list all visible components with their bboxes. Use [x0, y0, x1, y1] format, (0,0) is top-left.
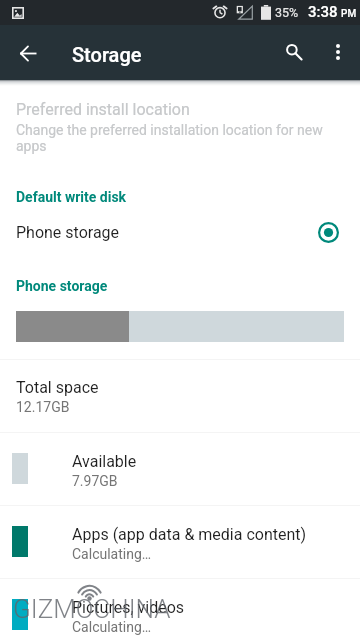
staticText: 12.17GB — [16, 399, 70, 415]
button[interactable]: Phone storage — [0, 214, 360, 251]
button[interactable]: Available — [0, 433, 360, 505]
staticText: Phone storage — [16, 278, 108, 294]
staticText: Pictures, videos — [72, 598, 185, 617]
staticText: GIZMOCHINA — [13, 594, 171, 624]
staticText: Calculating… — [72, 619, 152, 635]
button[interactable]: Apps (app data & media content) — [0, 506, 360, 578]
staticText: Phone storage — [16, 223, 321, 242]
button[interactable]: Preferred install location — [0, 93, 360, 161]
button[interactable]: Pictures, videos — [0, 579, 360, 640]
button[interactable]: Search — [270, 28, 318, 76]
staticText: PM — [341, 8, 357, 20]
staticText: 35% — [275, 5, 299, 20]
staticText: Total space — [16, 378, 99, 397]
staticText: Storage — [72, 43, 142, 66]
staticText: Available — [72, 452, 137, 471]
button[interactable]: Total space — [0, 360, 360, 432]
staticText: Preferred install location — [16, 100, 190, 119]
staticText: Calculating… — [72, 546, 152, 562]
staticText: 7.97GB — [72, 473, 118, 489]
staticText: Apps (app data & media content) — [72, 525, 307, 544]
button[interactable]: More options — [320, 29, 356, 77]
staticText: 3:38 — [308, 3, 338, 21]
button[interactable]: Navigate up — [4, 29, 52, 77]
staticText: Change the preferred installation locati… — [16, 122, 344, 154]
staticText: Default write disk — [16, 189, 127, 205]
